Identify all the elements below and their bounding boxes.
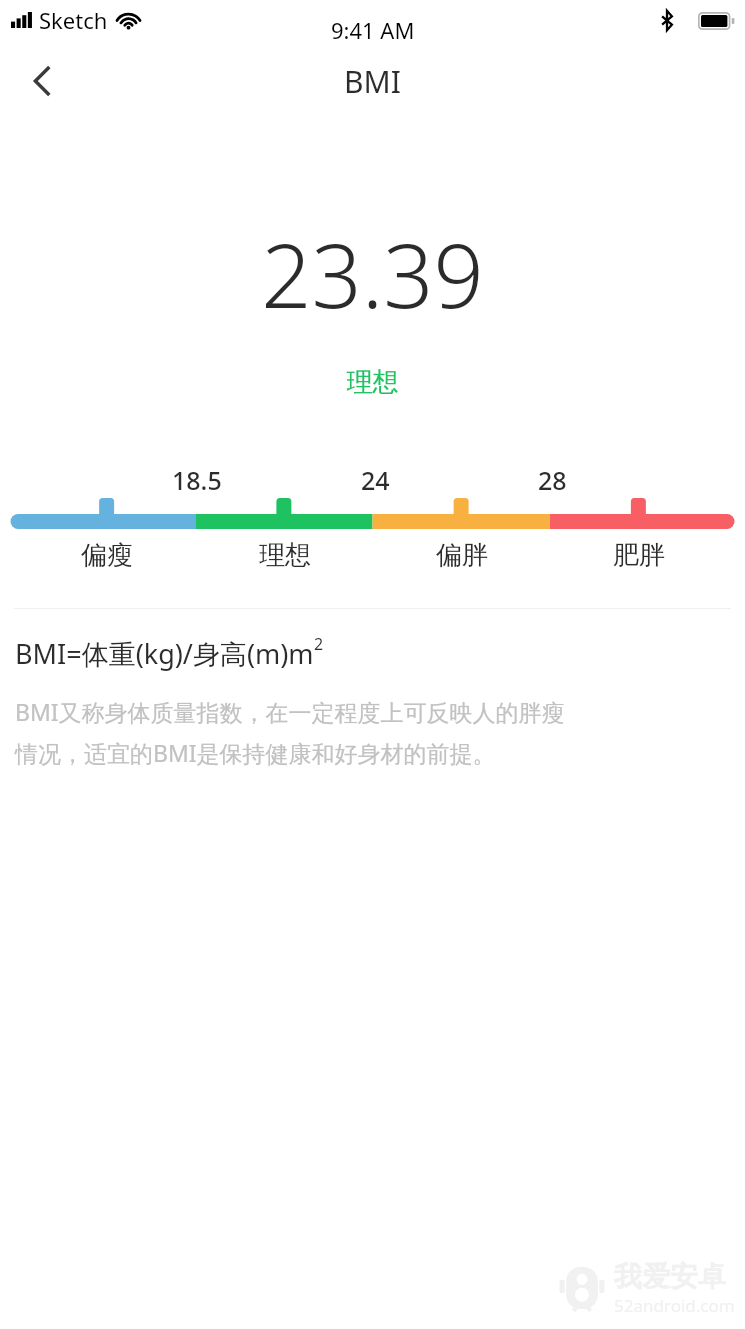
staticText: 理想 — [0, 366, 745, 399]
staticText: 情况，适宜的BMI是保持健康和好身材的前提。 — [15, 737, 496, 768]
staticText: 理想 — [259, 539, 311, 572]
staticText: 肥胖 — [613, 539, 665, 572]
staticText: BMI又称身体质量指数，在一定程度上可反映人的胖瘦 — [15, 696, 565, 727]
staticText: 我爱安卓 — [614, 1259, 726, 1294]
button[interactable]: Back — [6, 44, 80, 118]
staticText: 2 — [314, 633, 324, 655]
staticText: 23.39 — [0, 214, 745, 334]
staticText: 24 — [361, 463, 390, 497]
button[interactable]: 偏胖 — [373, 539, 550, 572]
staticText: 18.5 — [172, 463, 222, 497]
staticText: 偏瘦 — [81, 539, 133, 572]
staticText: 9:41 AM — [331, 15, 415, 45]
staticText: BMI — [344, 61, 401, 102]
button[interactable]: 理想 — [196, 539, 373, 572]
staticText: 52android.com — [614, 1294, 735, 1317]
staticText: BMI=体重(kg)/身高(m)m — [15, 635, 314, 672]
button[interactable]: 肥胖 — [550, 539, 727, 572]
button[interactable]: 偏瘦 — [18, 539, 196, 572]
staticText: Sketch — [39, 5, 108, 35]
staticText: 偏胖 — [436, 539, 488, 572]
staticText: 28 — [538, 463, 567, 497]
